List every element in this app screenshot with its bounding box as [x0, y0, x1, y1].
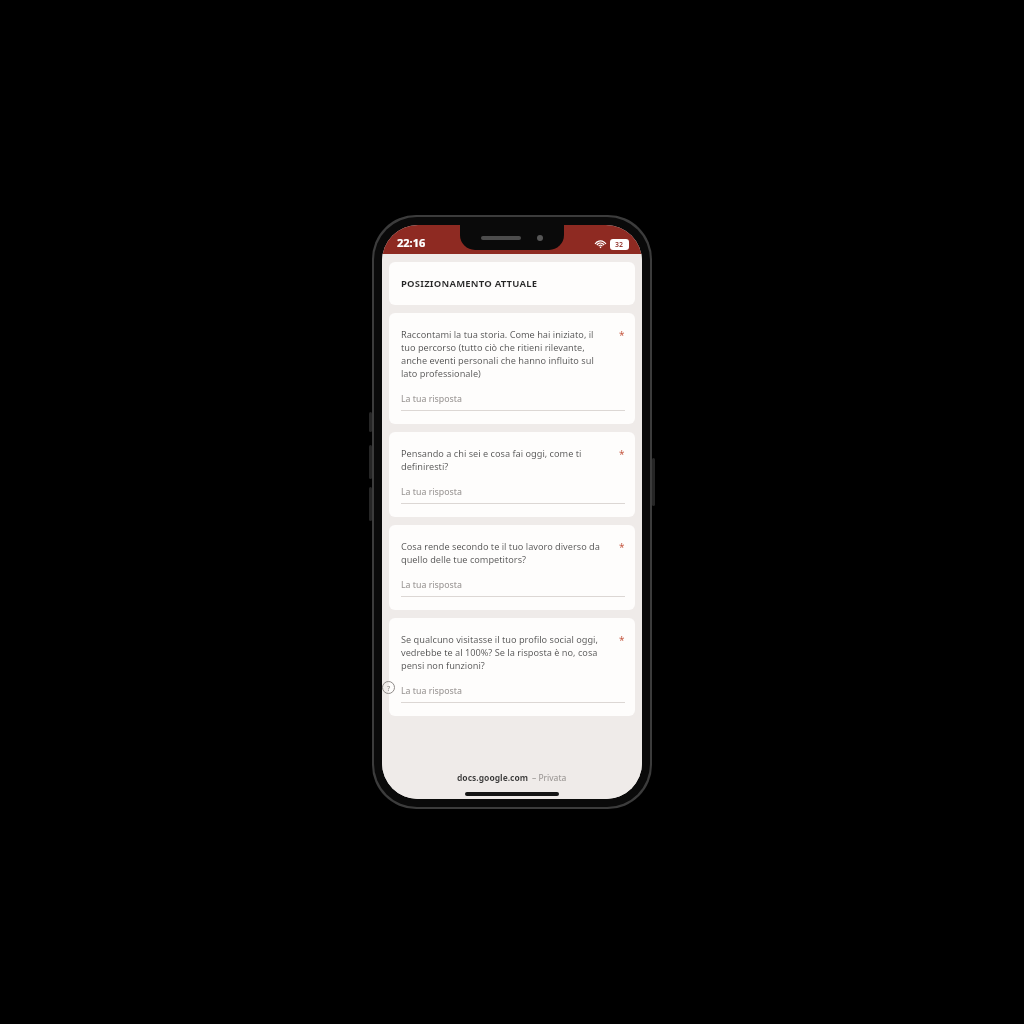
staticText: *	[619, 328, 625, 342]
staticText: Raccontami la tua storia. Come hai inizi…	[401, 328, 594, 341]
staticText: tuo percorso (tutto ciò che ritieni rile…	[401, 341, 585, 354]
staticText: Pensando a chi sei e cosa fai oggi, come…	[401, 447, 582, 460]
staticText: lato professionale)	[401, 367, 481, 380]
staticText: quello delle tue competitors?	[401, 553, 527, 566]
button[interactable]: Cosa rende secondo te il tuo lavoro dive…	[389, 525, 635, 610]
staticText: anche eventi personali che hanno influit…	[401, 354, 594, 367]
staticText: *	[619, 633, 625, 647]
staticText: 32	[615, 240, 624, 250]
staticText: La tua risposta	[401, 579, 462, 591]
button[interactable]: Raccontami la tua storia. Come hai inizi…	[389, 313, 635, 424]
staticText: *	[619, 540, 625, 554]
staticText: La tua risposta	[401, 486, 462, 498]
staticText: *	[619, 447, 625, 461]
staticText: POSIZIONAMENTO ATTUALE	[401, 277, 538, 290]
staticText: 22:16	[397, 235, 426, 250]
button[interactable]: Aiuto	[382, 681, 395, 694]
staticText: La tua risposta	[401, 685, 462, 697]
staticText: Cosa rende secondo te il tuo lavoro dive…	[401, 540, 600, 553]
button[interactable]: docs.google.com	[457, 772, 567, 784]
staticText: ?	[387, 683, 391, 693]
staticText: vedrebbe te al 100%? Se la risposta è no…	[401, 646, 598, 659]
staticText: Se qualcuno visitasse il tuo profilo soc…	[401, 633, 598, 646]
staticText: pensi non funzioni?	[401, 659, 485, 672]
button[interactable]: POSIZIONAMENTO ATTUALE	[389, 262, 635, 305]
staticText: definiresti?	[401, 460, 449, 473]
staticText: – Privata	[532, 772, 567, 784]
button[interactable]: Pensando a chi sei e cosa fai oggi, come…	[389, 432, 635, 517]
staticText: La tua risposta	[401, 393, 462, 405]
staticText: docs.google.com	[457, 772, 529, 784]
button[interactable]: Se qualcuno visitasse il tuo profilo soc…	[389, 618, 635, 716]
